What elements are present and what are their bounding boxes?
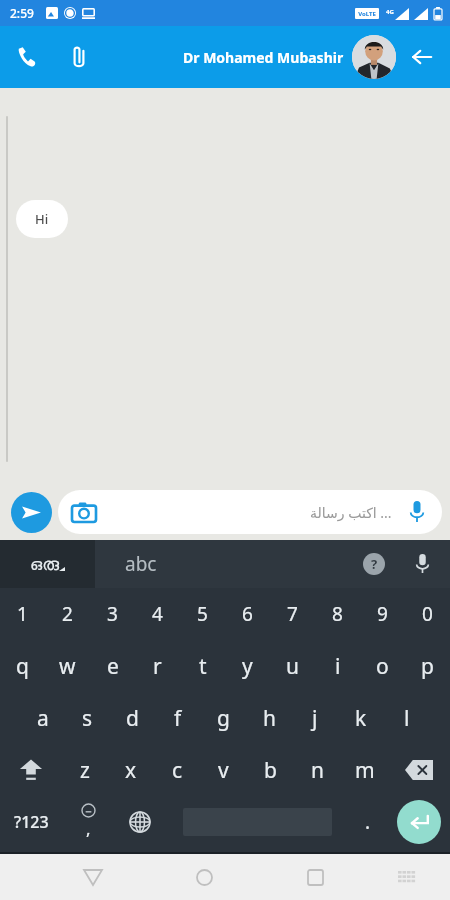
staticText: o — [376, 652, 389, 681]
staticText: 2:59 — [10, 5, 34, 21]
staticText: VoLTE — [358, 10, 376, 18]
staticText: ഒരു — [30, 556, 59, 573]
button[interactable]: Attach — [57, 35, 101, 79]
button[interactable]: t — [180, 640, 225, 692]
button[interactable]: q — [0, 640, 45, 692]
button[interactable]: 5 — [180, 588, 225, 640]
staticText: u — [286, 652, 299, 681]
staticText: w — [59, 652, 76, 681]
button[interactable]: Hide keyboard — [70, 854, 116, 900]
button[interactable]: Voice message — [402, 497, 432, 527]
staticText: ?123 — [14, 811, 49, 833]
button[interactable]: w — [45, 640, 90, 692]
button[interactable]: l — [384, 692, 430, 744]
button[interactable]: Profile photo — [352, 35, 396, 79]
button[interactable]: y — [225, 640, 270, 692]
button[interactable]: m — [341, 744, 388, 796]
button[interactable]: Call — [6, 35, 50, 79]
staticText: z — [80, 756, 90, 785]
button[interactable]: Recents — [292, 854, 338, 900]
button[interactable]: Switch keyboard — [387, 857, 427, 897]
staticText: g — [217, 704, 230, 733]
button[interactable]: Change keyboard language — [114, 796, 166, 848]
button[interactable]: 6 — [225, 588, 270, 640]
button[interactable]: j — [292, 692, 338, 744]
button[interactable]: Space — [166, 808, 348, 836]
staticText: . — [365, 809, 371, 835]
staticText: n — [311, 756, 324, 785]
staticText: 9 — [377, 601, 388, 627]
button[interactable]: Enter — [388, 796, 450, 848]
staticText: r — [153, 652, 162, 681]
button[interactable]: abc — [95, 540, 350, 588]
button[interactable]: . — [348, 796, 388, 848]
staticText: 7 — [287, 601, 298, 627]
button[interactable]: Camera — [68, 496, 100, 528]
button[interactable]: Shift — [0, 744, 62, 796]
button[interactable]: v — [200, 744, 247, 796]
staticText: 2 — [62, 601, 73, 627]
staticText: 6 — [242, 601, 253, 627]
button[interactable]: Hi — [16, 200, 68, 238]
button[interactable]: 7 — [270, 588, 315, 640]
button[interactable]: h — [246, 692, 292, 744]
staticText: 0 — [422, 601, 433, 627]
staticText: 3 — [107, 601, 118, 627]
staticText: q — [16, 652, 29, 681]
staticText: d — [126, 704, 139, 733]
button[interactable]: 0 — [405, 588, 450, 640]
staticText: s — [82, 704, 93, 733]
staticText: m — [355, 756, 375, 785]
staticText: y — [242, 652, 253, 681]
button[interactable]: s — [65, 692, 110, 744]
staticText: 5 — [197, 601, 208, 627]
button[interactable]: 9 — [360, 588, 405, 640]
staticText: h — [263, 704, 276, 733]
button[interactable]: Camera — [58, 490, 442, 534]
staticText: i — [335, 652, 341, 681]
button[interactable]: 2 — [45, 588, 90, 640]
button[interactable]: Emoji and comma — [62, 796, 114, 848]
button[interactable]: ?123 — [0, 796, 62, 848]
button[interactable]: o — [360, 640, 405, 692]
staticText: 1 — [17, 601, 28, 627]
button[interactable]: g — [200, 692, 246, 744]
button[interactable]: f — [155, 692, 200, 744]
button[interactable]: 8 — [315, 588, 360, 640]
staticText: c — [172, 756, 183, 785]
button[interactable]: Send — [11, 492, 52, 533]
button[interactable]: e — [90, 640, 135, 692]
button[interactable]: Voice input — [398, 540, 446, 588]
button[interactable]: u — [270, 640, 315, 692]
staticText: j — [312, 704, 318, 733]
button[interactable]: d — [110, 692, 155, 744]
button[interactable]: b — [247, 744, 294, 796]
button[interactable]: 4 — [135, 588, 180, 640]
button[interactable]: Backspace — [388, 744, 450, 796]
button[interactable]: n — [294, 744, 341, 796]
button[interactable]: 1 — [0, 588, 45, 640]
button[interactable]: Language — [0, 540, 95, 588]
button[interactable]: a — [20, 692, 65, 744]
button[interactable]: k — [338, 692, 384, 744]
staticText: 4 — [152, 601, 163, 627]
staticText: e — [107, 652, 119, 681]
button[interactable]: z — [62, 744, 108, 796]
staticText: 8 — [332, 601, 343, 627]
button[interactable]: i — [315, 640, 360, 692]
staticText: f — [174, 704, 182, 733]
staticText: a — [37, 704, 49, 733]
staticText: ? — [371, 555, 378, 573]
button[interactable]: 3 — [90, 588, 135, 640]
staticText: l — [404, 704, 410, 733]
staticText: abc — [125, 551, 157, 577]
button[interactable]: Back — [402, 37, 442, 77]
button[interactable]: c — [154, 744, 200, 796]
button[interactable]: x — [108, 744, 154, 796]
staticText: x — [125, 756, 137, 785]
button[interactable]: Help — [350, 540, 398, 588]
button[interactable]: Home — [181, 854, 227, 900]
button[interactable]: r — [135, 640, 180, 692]
button[interactable]: Dr Mohamed Mubashir — [183, 48, 344, 67]
button[interactable]: p — [405, 640, 450, 692]
